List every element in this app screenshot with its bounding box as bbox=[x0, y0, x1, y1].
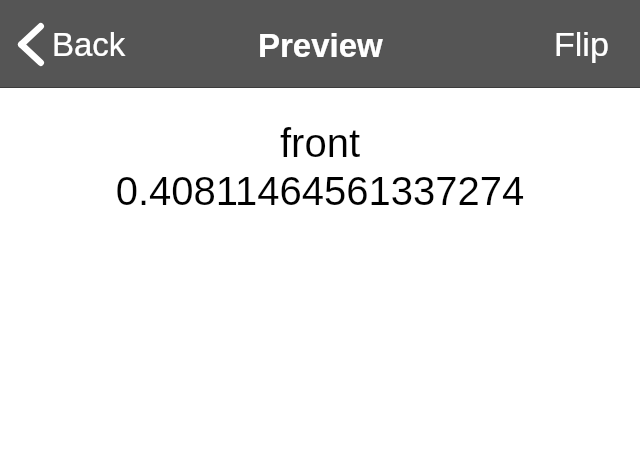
staticText: Back bbox=[52, 26, 126, 63]
button[interactable]: Flip bbox=[536, 17, 640, 71]
staticText: front 0.40811464561337274 bbox=[0, 121, 640, 214]
staticText: Flip bbox=[554, 25, 609, 63]
button[interactable]: Back bbox=[0, 17, 138, 72]
staticText: Preview bbox=[258, 27, 383, 64]
